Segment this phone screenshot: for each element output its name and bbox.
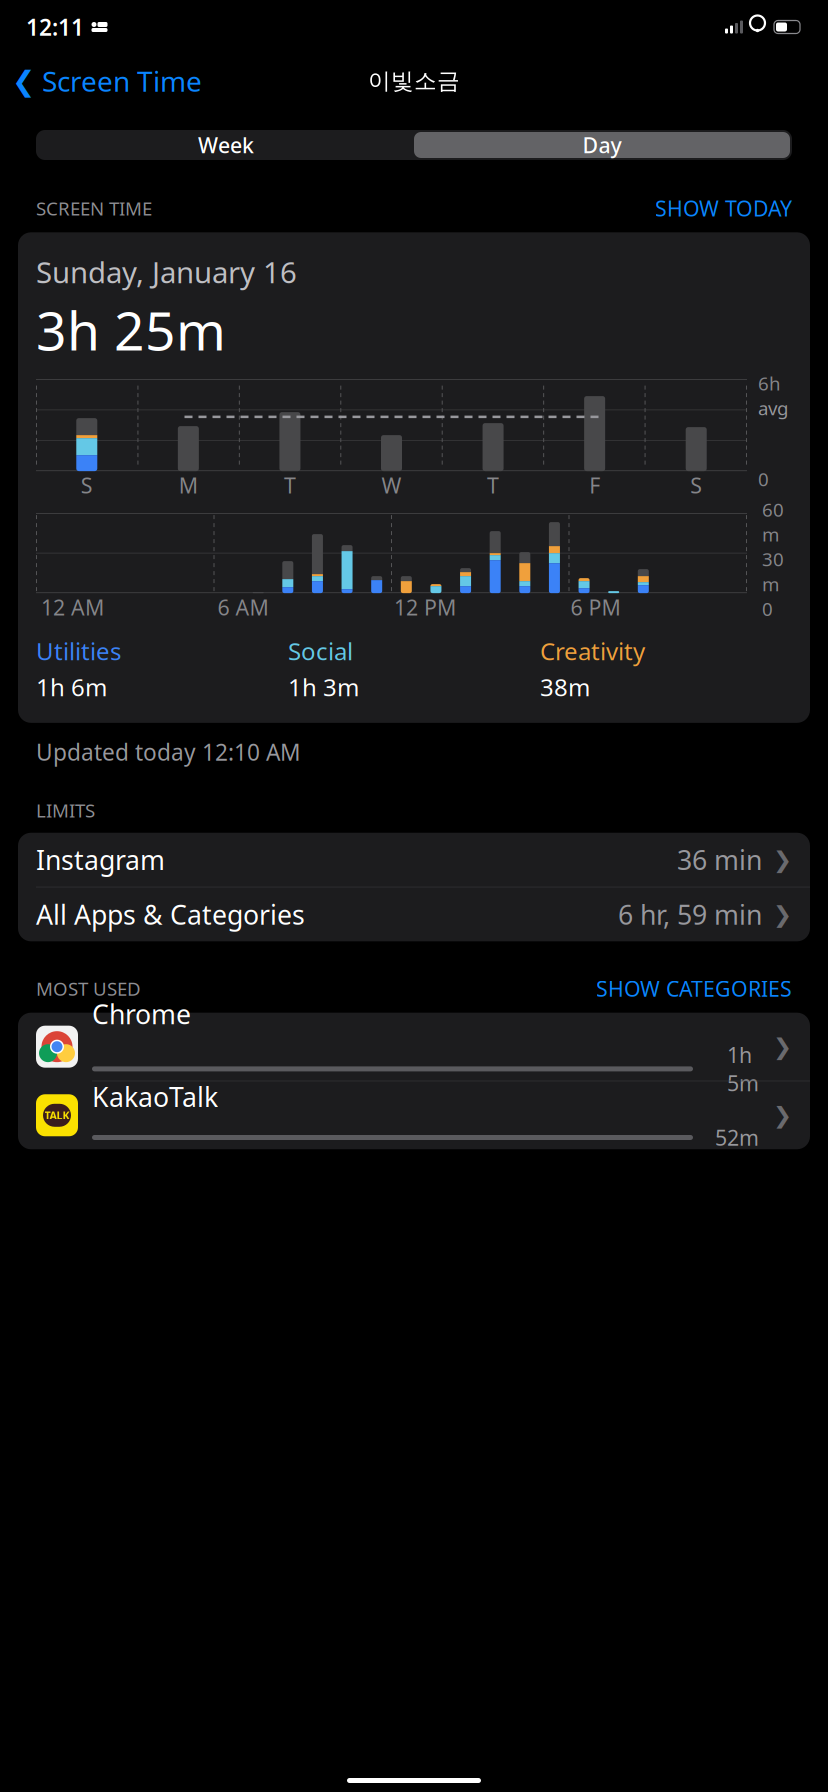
staticText: Instagram bbox=[36, 842, 165, 877]
staticText: 1h 3m bbox=[288, 671, 359, 703]
staticText: 38m bbox=[540, 671, 590, 703]
staticText: MOST USED bbox=[36, 976, 141, 1001]
staticText: TALK bbox=[44, 1108, 69, 1122]
staticText: 1h 6m bbox=[36, 671, 107, 703]
staticText: KakaoTalk bbox=[92, 1079, 218, 1114]
button[interactable]: Chrome bbox=[18, 1013, 810, 1081]
staticText: Utilities bbox=[36, 635, 121, 667]
staticText: ❯ bbox=[773, 847, 792, 873]
staticText: F bbox=[589, 471, 600, 499]
staticText: ❮ bbox=[12, 65, 35, 97]
staticText: S bbox=[690, 471, 702, 499]
staticText: 3h 25m bbox=[36, 294, 226, 365]
button[interactable]: Week bbox=[38, 132, 414, 158]
staticText: 이빛소금 bbox=[368, 67, 460, 95]
button[interactable]: SHOW CATEGORIES bbox=[596, 974, 792, 1003]
staticText: ❯ bbox=[773, 1034, 792, 1059]
staticText: 1h 5m bbox=[727, 1041, 759, 1097]
staticText: T bbox=[284, 471, 296, 499]
button[interactable]: All Apps & Categories bbox=[18, 887, 810, 941]
staticText: Screen Time bbox=[42, 62, 202, 100]
staticText: W bbox=[381, 471, 401, 499]
staticText: T bbox=[487, 471, 499, 499]
staticText: M bbox=[179, 471, 198, 499]
staticText: 12:11 bbox=[26, 12, 84, 42]
staticText: 36 min bbox=[677, 842, 762, 877]
staticText: 6h bbox=[758, 371, 781, 396]
button[interactable]: Instagram bbox=[18, 833, 810, 887]
staticText: ❯ bbox=[773, 901, 792, 927]
staticText: avg bbox=[758, 396, 788, 420]
staticText: 12 PM bbox=[394, 593, 456, 621]
staticText: Social bbox=[288, 635, 353, 667]
staticText: SHOW TODAY bbox=[655, 194, 792, 222]
staticText: SCREEN TIME bbox=[36, 196, 152, 221]
staticText: 12 AM bbox=[41, 593, 104, 621]
staticText: SHOW CATEGORIES bbox=[596, 974, 792, 1003]
staticText: Day bbox=[582, 131, 621, 159]
staticText: All Apps & Categories bbox=[36, 897, 305, 932]
button[interactable]: Day bbox=[414, 132, 790, 158]
button[interactable]: ❮ bbox=[0, 55, 214, 107]
button[interactable]: TALK bbox=[18, 1081, 810, 1149]
staticText: 0 bbox=[762, 596, 773, 621]
staticText: 60m bbox=[762, 497, 784, 547]
staticText: 6 hr, 59 min bbox=[618, 897, 762, 932]
staticText: 30m bbox=[762, 547, 784, 596]
staticText: Week bbox=[198, 131, 254, 159]
staticText: 6 PM bbox=[570, 593, 620, 621]
button[interactable]: SHOW TODAY bbox=[655, 194, 792, 222]
staticText: 52m bbox=[715, 1123, 759, 1152]
staticText: ❯ bbox=[773, 1102, 792, 1128]
staticText: 6 AM bbox=[217, 593, 268, 621]
staticText: Creativity bbox=[540, 635, 645, 667]
staticText: S bbox=[81, 471, 93, 499]
staticText: Updated today 12:10 AM bbox=[36, 737, 301, 767]
staticText: LIMITS bbox=[36, 798, 95, 823]
staticText: Sunday, January 16 bbox=[36, 252, 297, 291]
staticText: Chrome bbox=[92, 996, 191, 1031]
staticText: 0 bbox=[758, 466, 769, 491]
